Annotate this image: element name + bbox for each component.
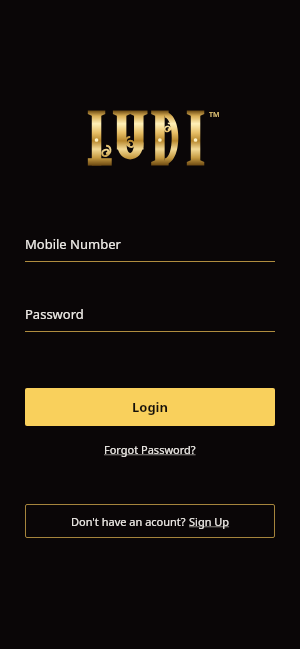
button[interactable]: Don't have an acount?: [25, 504, 275, 538]
staticText: Sign Up: [189, 514, 230, 529]
staticText: Forgot Password?: [104, 442, 196, 457]
staticText: Mobile Number: [25, 235, 121, 253]
button[interactable]: Login: [25, 388, 275, 426]
button[interactable]: Forgot Password?: [98, 439, 202, 460]
button[interactable]: Mobile Number: [25, 235, 275, 262]
button[interactable]: Password: [25, 305, 275, 332]
staticText: Login: [132, 398, 168, 416]
staticText: Don't have an acount?: [71, 514, 189, 529]
staticText: TM: [209, 110, 220, 120]
staticText: Password: [25, 305, 84, 323]
